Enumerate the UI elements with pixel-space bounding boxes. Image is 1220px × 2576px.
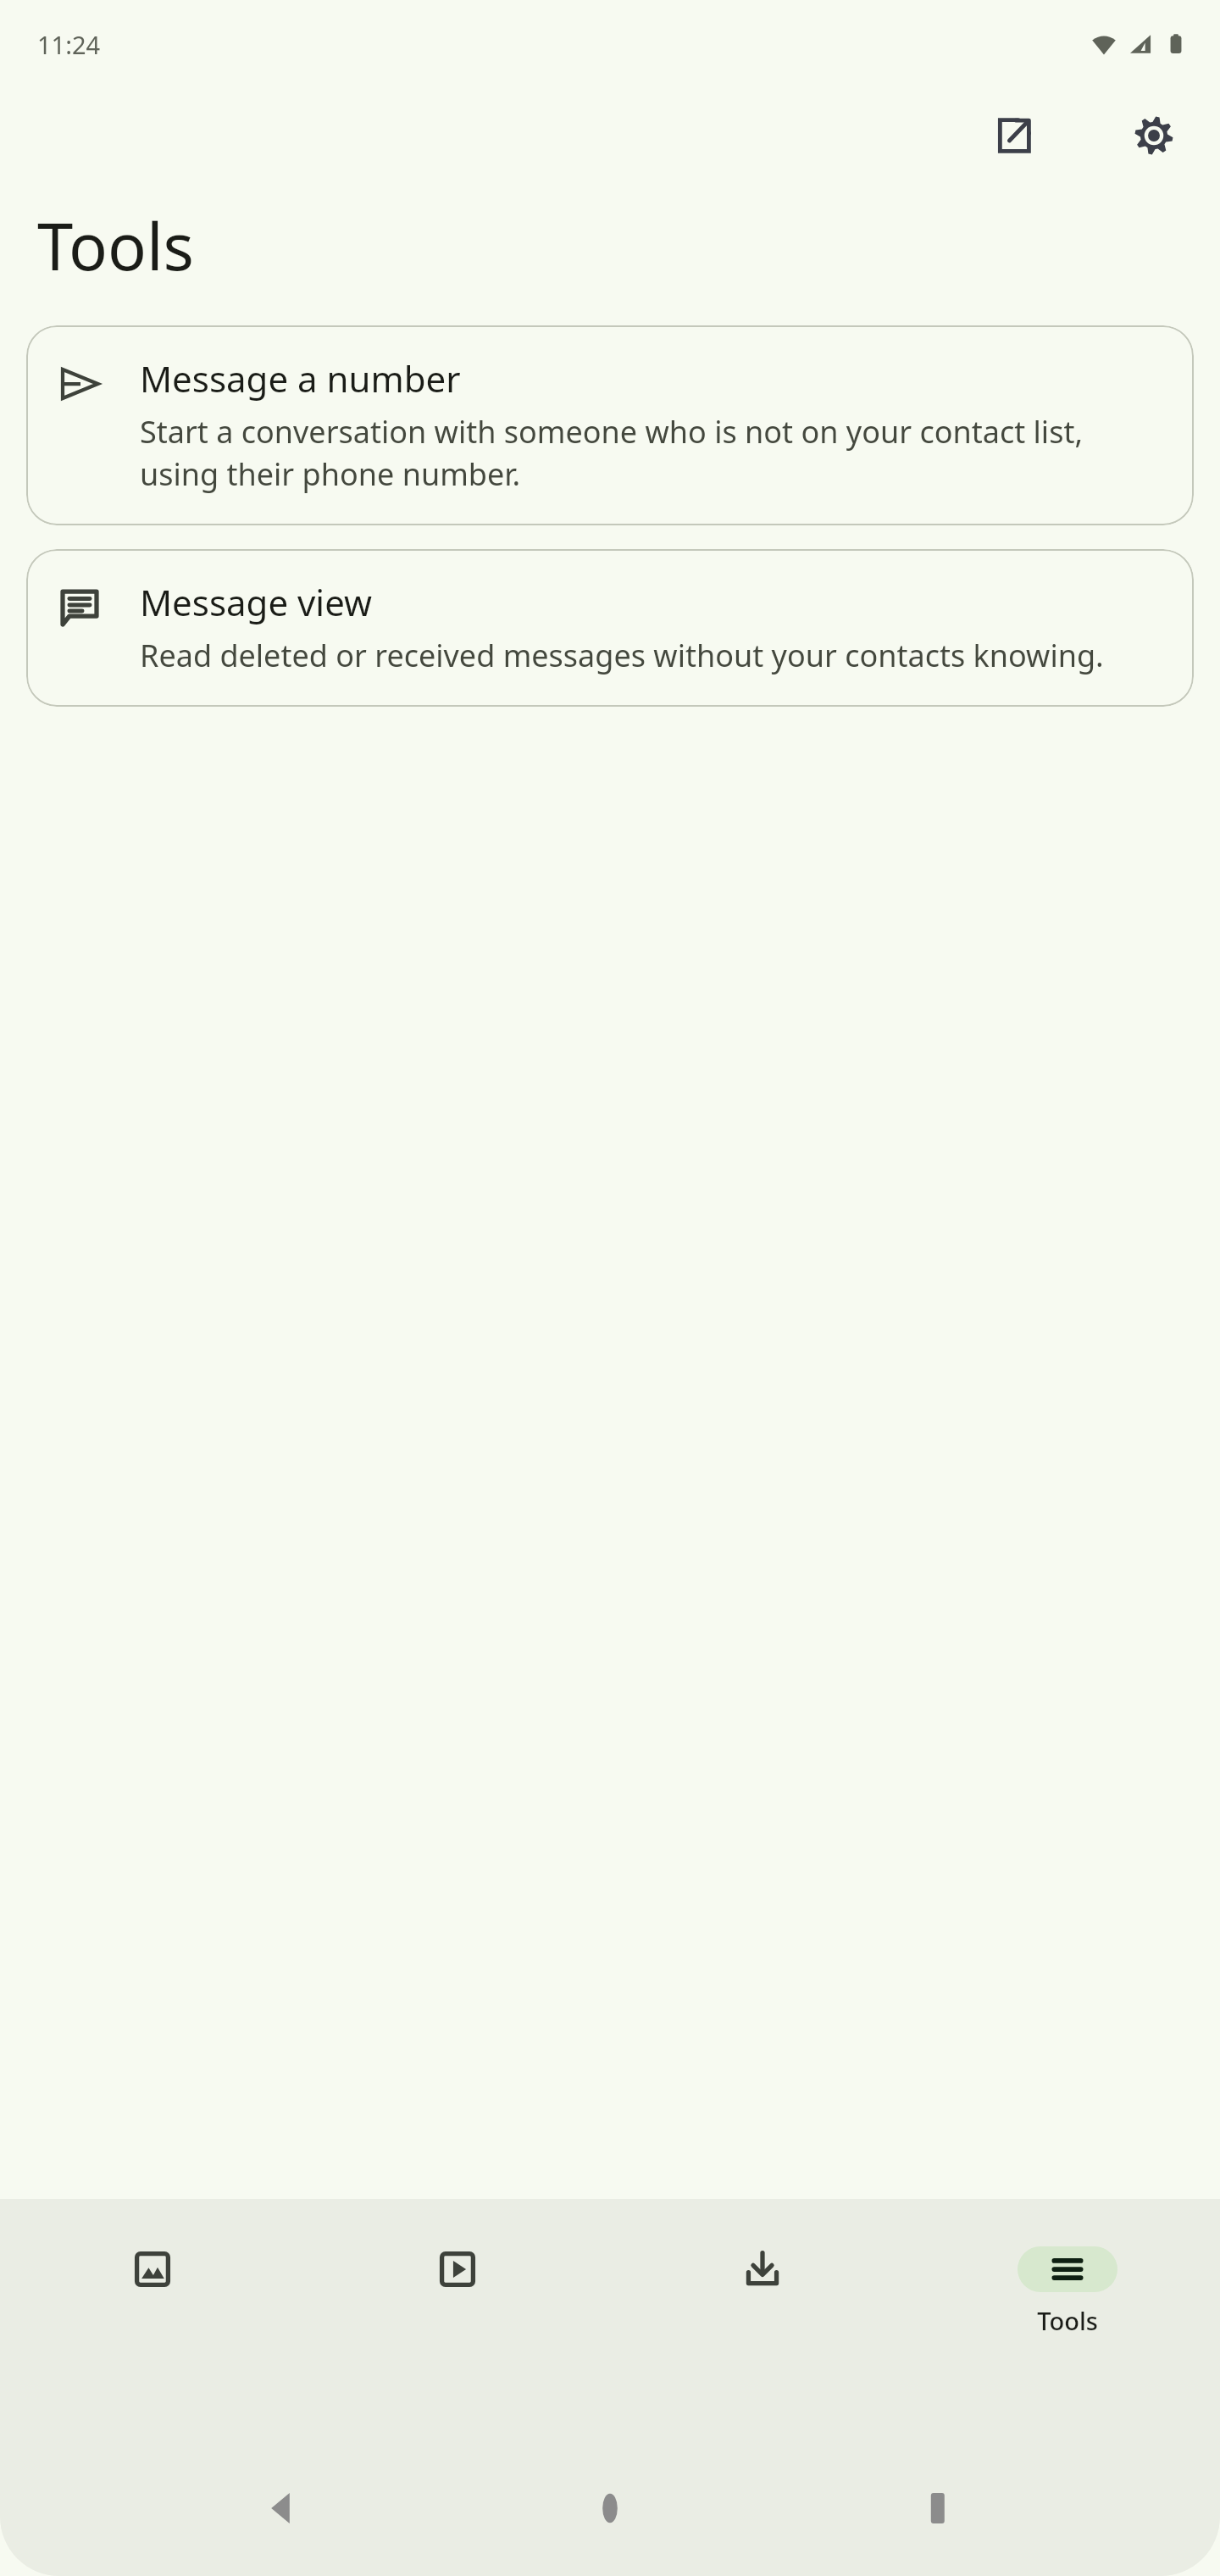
staticText: Start a conversation with someone who is…: [140, 411, 1168, 495]
button[interactable]: Videos: [305, 2199, 610, 2440]
staticText: 11:24: [37, 28, 101, 61]
button[interactable]: Home: [563, 2462, 657, 2555]
button[interactable]: Settings: [1113, 95, 1195, 176]
button[interactable]: Open in new: [973, 95, 1054, 176]
staticText: Tools: [37, 202, 194, 290]
staticText: Read deleted or received messages withou…: [140, 635, 1104, 676]
staticText: Message view: [140, 578, 373, 626]
button[interactable]: Recents: [892, 2462, 985, 2555]
button[interactable]: Back: [236, 2462, 329, 2555]
button[interactable]: Downloads: [610, 2199, 915, 2440]
button[interactable]: Message view: [26, 549, 1194, 707]
button[interactable]: Images: [0, 2199, 305, 2440]
button[interactable]: Message a number: [26, 325, 1194, 525]
staticText: Message a number: [140, 354, 461, 402]
staticText: Tools: [1037, 2304, 1098, 2337]
button[interactable]: Tools: [915, 2199, 1220, 2440]
